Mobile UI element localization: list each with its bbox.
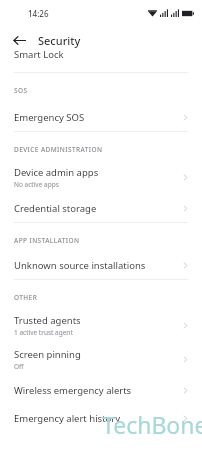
staticText: Off (14, 362, 24, 371)
staticText: 1 active trust agent (14, 328, 73, 337)
staticText: Emergency SOS (14, 111, 85, 124)
staticText: Unknown source installations (14, 259, 146, 272)
staticText: Security (38, 33, 81, 48)
staticText: Trusted agents (14, 314, 81, 327)
staticText: TechBone (102, 409, 202, 440)
button[interactable]: Emergency alert history (0, 404, 202, 432)
staticText: 14:26 (28, 8, 49, 19)
button[interactable]: Wireless emergency alerts (0, 376, 202, 404)
button[interactable]: Credential storage (0, 194, 202, 222)
staticText: Wireless emergency alerts (14, 384, 132, 397)
button[interactable]: Smart Lock (0, 54, 202, 65)
staticText: Smart Lock (14, 48, 64, 59)
staticText: APP INSTALLATION (14, 236, 80, 245)
staticText: DEVICE ADMINISTRATION (14, 145, 103, 154)
button[interactable]: Device admin apps (0, 160, 202, 194)
button[interactable]: Emergency SOS (0, 103, 202, 131)
staticText: Credential storage (14, 202, 97, 215)
staticText: Emergency alert history (14, 412, 121, 425)
staticText: Device admin apps (14, 166, 99, 179)
staticText: SOS (14, 86, 28, 95)
staticText: OTHER (14, 293, 38, 302)
staticText: No active apps (14, 180, 59, 189)
button[interactable]: Trusted agents (0, 308, 202, 342)
button[interactable]: Back (8, 29, 30, 51)
button[interactable]: Unknown source installations (0, 251, 202, 279)
staticText: Screen pinning (14, 348, 81, 361)
button[interactable]: Screen pinning (0, 342, 202, 376)
